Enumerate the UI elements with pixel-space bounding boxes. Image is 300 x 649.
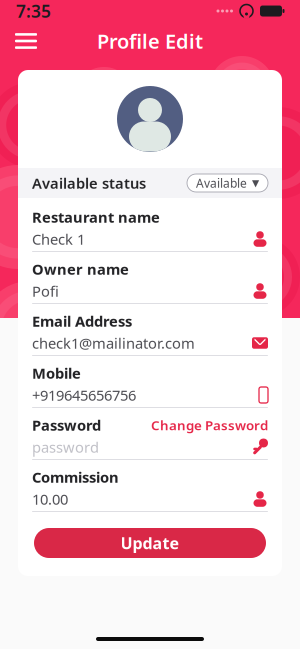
staticText: +919645656756 [32,385,136,405]
staticText: Change Password [151,416,268,434]
staticText: Password [32,415,101,435]
staticText: check1@mailinator.com [32,333,195,353]
staticText: 7:35 [16,0,51,22]
button[interactable]: Change Password [151,416,268,434]
button[interactable]: Available [187,174,268,192]
staticText: Restaurant name [32,207,160,227]
staticText: Available status [32,173,146,193]
staticText: Check 1 [32,229,85,249]
staticText: 10.00 [32,489,68,509]
staticText: Available [196,175,247,191]
staticText: Email Address [32,311,132,331]
staticText: Mobile [32,363,81,383]
staticText: Profile Edit [97,28,203,54]
staticText: Commission [32,467,119,487]
staticText: password [32,437,99,457]
button[interactable]: Update [34,528,266,558]
staticText: Pofi [32,281,59,301]
button[interactable]: Menu [6,24,46,58]
staticText: Update [120,532,179,554]
staticText: Owner name [32,259,129,279]
staticText: ▼ [252,178,259,188]
